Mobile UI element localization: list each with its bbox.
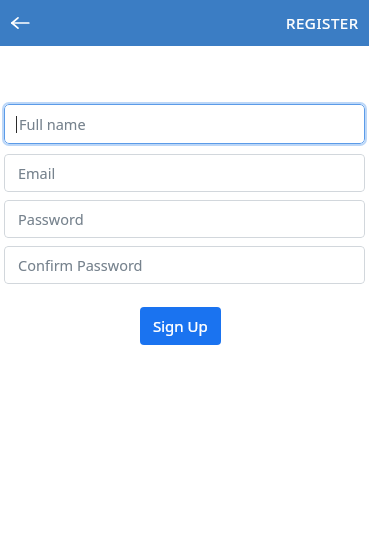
staticText: Password <box>18 209 84 229</box>
staticText: Email <box>18 163 56 183</box>
button[interactable]: Confirm Password <box>4 246 365 284</box>
staticText: Confirm Password <box>18 255 143 275</box>
button[interactable]: Sign Up <box>140 307 221 345</box>
staticText: Full name <box>19 114 86 134</box>
button[interactable]: Email <box>4 154 365 192</box>
staticText: REGISTER <box>286 13 359 33</box>
staticText: Sign Up <box>153 316 208 336</box>
button[interactable]: REGISTER <box>286 13 359 33</box>
button[interactable]: Back <box>4 7 36 39</box>
button[interactable]: Full name <box>2 102 367 146</box>
button[interactable]: Password <box>4 200 365 238</box>
